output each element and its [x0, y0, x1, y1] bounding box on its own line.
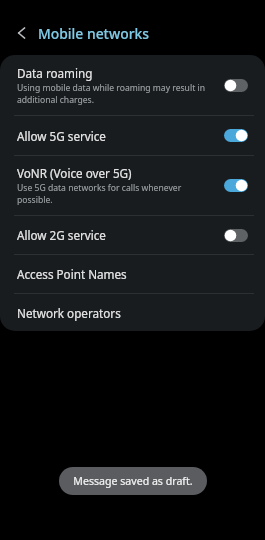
button[interactable]: Allow 5G service — [0, 116, 265, 155]
button[interactable]: Back — [7, 16, 35, 50]
staticText: Access Point Names — [17, 266, 127, 282]
staticText: Use 5G data networks for calls whenever … — [17, 182, 216, 206]
staticText: VoNR (Voice over 5G) — [17, 165, 132, 181]
staticText: Allow 2G service — [17, 227, 106, 243]
button[interactable]: Allow 2G service — [0, 216, 265, 254]
staticText: Mobile networks — [38, 24, 150, 43]
staticText: Network operators — [17, 305, 121, 321]
button[interactable]: VoNR (Voice over 5G) — [0, 156, 265, 215]
button[interactable]: Access Point Names — [0, 255, 265, 293]
button[interactable]: Message saved as draft. — [59, 467, 207, 495]
staticText: Allow 5G service — [17, 128, 106, 144]
button[interactable]: Network operators — [0, 294, 265, 331]
staticText: Message saved as draft. — [73, 474, 193, 488]
staticText: Data roaming — [17, 65, 93, 81]
button[interactable]: Data roaming — [0, 55, 265, 115]
staticText: Using mobile data while roaming may resu… — [17, 82, 216, 106]
